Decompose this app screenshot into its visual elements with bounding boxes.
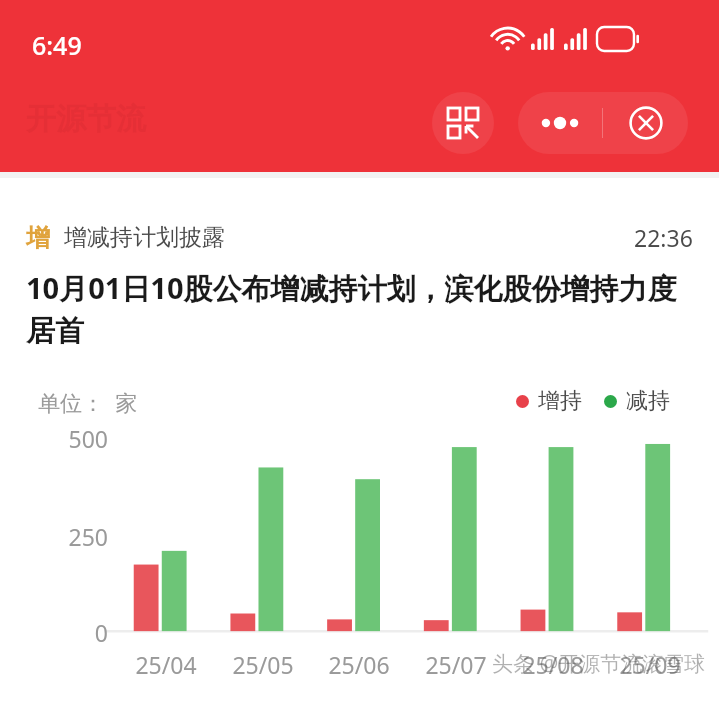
button[interactable]: Close <box>603 92 688 154</box>
staticText: 25/04 <box>128 649 204 680</box>
staticText: 25/09 <box>612 649 688 680</box>
staticText: 增 <box>26 223 50 253</box>
button[interactable]: 10月01日10股公布增减持计划，滨化股份增持力度居首 <box>26 268 693 350</box>
staticText: 头条 @开源节流滚雪球 <box>492 649 706 678</box>
staticText: 250 <box>48 521 108 552</box>
staticText: 6:49 <box>32 28 82 62</box>
staticText: 0 <box>48 617 108 648</box>
staticText: 增持 <box>538 387 582 415</box>
staticText: 500 <box>48 423 108 454</box>
staticText: 25/07 <box>418 649 494 680</box>
staticText: 25/06 <box>321 649 397 680</box>
staticText: 减持 <box>626 387 670 415</box>
staticText: 增减持计划披露 <box>64 223 225 252</box>
staticText: 22:36 <box>634 222 693 253</box>
staticText: 25/08 <box>515 649 591 680</box>
button[interactable]: 增 <box>26 222 693 253</box>
staticText: 单位： 家 <box>38 387 138 417</box>
button[interactable]: Mini program menu <box>432 92 494 154</box>
button[interactable]: More options <box>518 92 602 154</box>
staticText: 25/05 <box>225 649 301 680</box>
staticText: 开源节流 <box>26 100 146 138</box>
staticText: 10月01日10股公布增减持计划，滨化股份增持力度居首 <box>26 268 693 350</box>
